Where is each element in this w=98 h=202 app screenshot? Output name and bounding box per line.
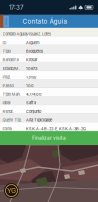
staticText: Alta Tipicidade xyxy=(26,118,52,122)
staticText: Contato Águia xyxy=(22,18,67,25)
button[interactable]: Logo xyxy=(2,181,21,200)
staticText: 17:37 xyxy=(9,4,23,11)
button[interactable]: Back xyxy=(3,16,9,27)
staticText: Finalizar visita xyxy=(32,135,66,141)
staticText: Insp. xyxy=(2,75,10,79)
staticText: Bandeira xyxy=(2,57,18,62)
staticText: Alguem xyxy=(26,40,40,45)
staticText: 13192 xyxy=(26,75,36,79)
staticText: Folha xyxy=(2,126,11,131)
staticText: Conjunto xyxy=(26,109,41,114)
button[interactable]: Finalizar visita xyxy=(0,131,98,145)
staticText: Rendi. xyxy=(2,109,13,114)
staticText: Krosar xyxy=(26,57,38,62)
staticText: Quem Tip. xyxy=(2,118,21,122)
staticText: 100 xyxy=(26,83,34,88)
staticText: ID xyxy=(2,40,6,45)
staticText: KSK-A-4B-22-E, KSK-A-3B-2G xyxy=(26,126,86,131)
staticText: Tipo Man. xyxy=(2,92,20,97)
staticText: 10673 xyxy=(26,66,37,71)
staticText: Safra xyxy=(26,100,36,105)
staticText: Ideal xyxy=(2,100,10,105)
staticText: Passo xyxy=(2,83,13,88)
staticText: 4.774,00 xyxy=(26,92,42,97)
staticText: Visualiz. Lotes xyxy=(26,32,51,36)
staticText: YG xyxy=(7,187,16,195)
staticText: Tipo xyxy=(2,49,10,54)
staticText: Estado/M. xyxy=(2,66,19,71)
staticText: Bloqueios xyxy=(26,49,43,54)
staticText: Contato Águia xyxy=(2,32,26,36)
